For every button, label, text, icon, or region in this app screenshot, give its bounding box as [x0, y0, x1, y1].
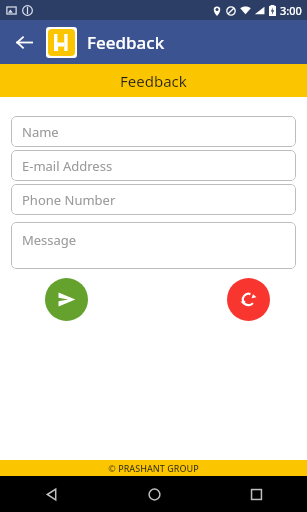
staticText: Phone Number [22, 191, 116, 209]
staticText: 3:00 [280, 3, 302, 18]
staticText: Name [22, 123, 59, 141]
button[interactable]: Message [11, 222, 296, 269]
button[interactable]: Phone Number [11, 184, 296, 215]
button[interactable]: Home [103, 476, 205, 512]
button[interactable]: E-mail Address [11, 150, 296, 181]
button[interactable]: Back [0, 476, 103, 512]
button[interactable]: Back [8, 26, 40, 58]
button[interactable]: Name [11, 116, 296, 147]
button[interactable]: Reset [227, 278, 270, 321]
button[interactable]: Send [45, 278, 88, 321]
staticText: Feedback [87, 31, 165, 54]
staticText: Message [22, 231, 77, 249]
button[interactable]: Recents [205, 476, 307, 512]
staticText: E-mail Address [22, 157, 113, 175]
staticText: © PRASHANT GROUP [108, 462, 199, 474]
staticText: Feedback [120, 71, 187, 91]
